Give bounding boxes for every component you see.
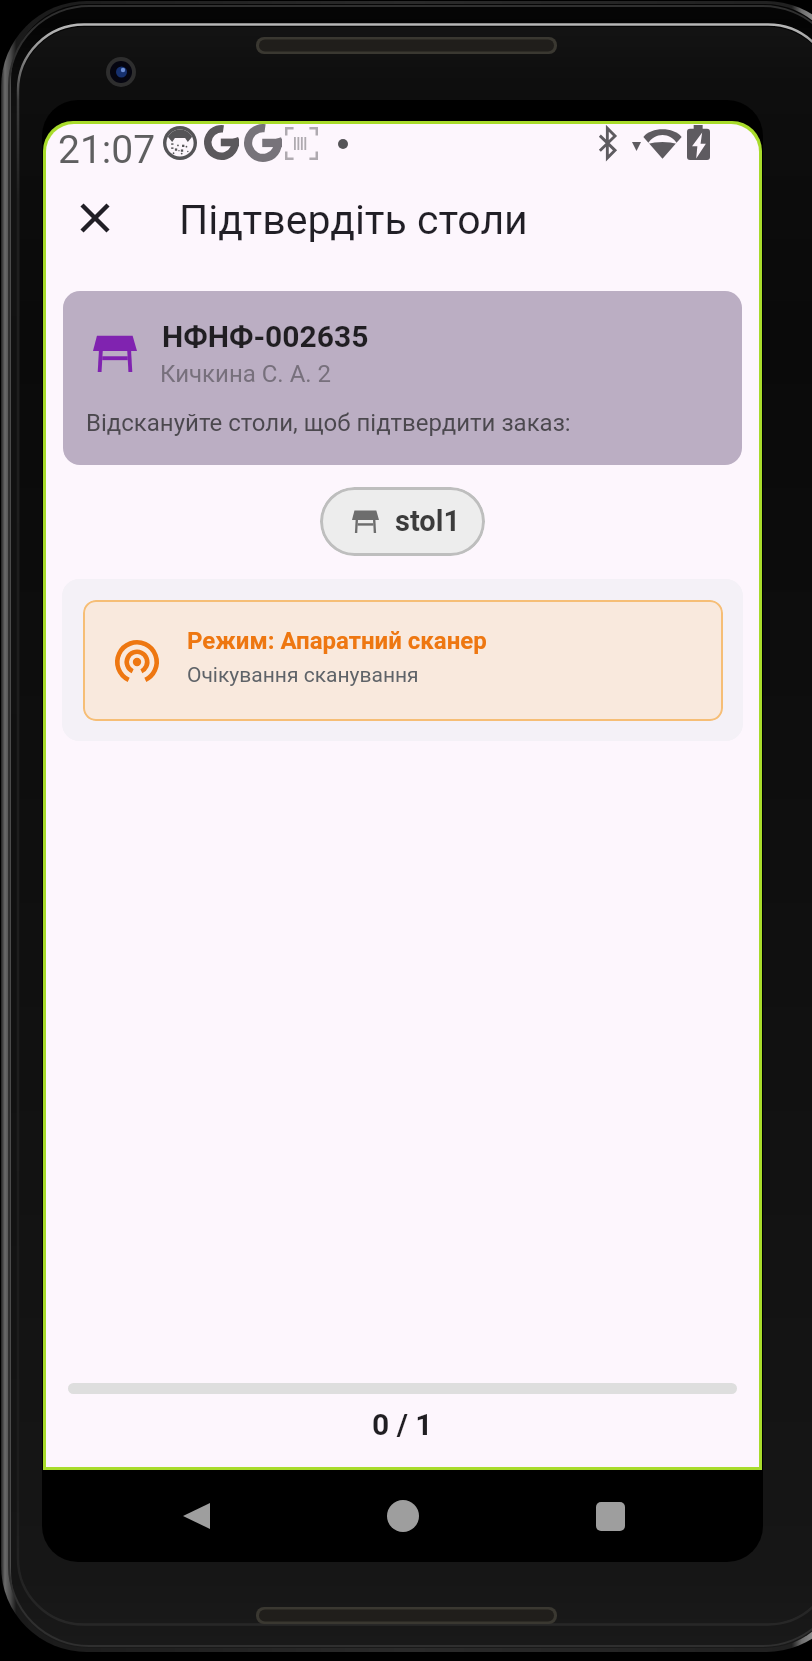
button[interactable]: Режим: Апаратний сканер <box>83 600 723 721</box>
button[interactable]: stol1 <box>320 487 485 556</box>
staticText: Кичкина С. А. 2 <box>160 360 332 388</box>
button[interactable]: Close <box>68 191 121 244</box>
button[interactable]: НФНФ-002635 <box>63 291 742 465</box>
button[interactable]: Home <box>374 1487 432 1545</box>
staticText: stol1 <box>395 504 461 538</box>
staticText: Режим: Апаратний сканер <box>187 627 487 655</box>
staticText: Очікування сканування <box>187 663 419 688</box>
button[interactable]: Back <box>167 1487 225 1545</box>
staticText: НФНФ-002635 <box>162 319 369 354</box>
staticText: Підтвердіть столи <box>179 196 528 244</box>
button[interactable]: Recent apps <box>581 1487 639 1545</box>
staticText: 21:07 <box>58 127 156 173</box>
staticText: Відскануйте столи, щоб підтвердити заказ… <box>86 409 571 437</box>
staticText: 0 / 1 <box>372 1407 433 1442</box>
